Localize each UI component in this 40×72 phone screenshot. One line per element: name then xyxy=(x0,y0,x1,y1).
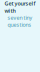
staticText: Get yourself with xyxy=(4,0,35,14)
staticText: seven tiny questions xyxy=(7,14,32,28)
